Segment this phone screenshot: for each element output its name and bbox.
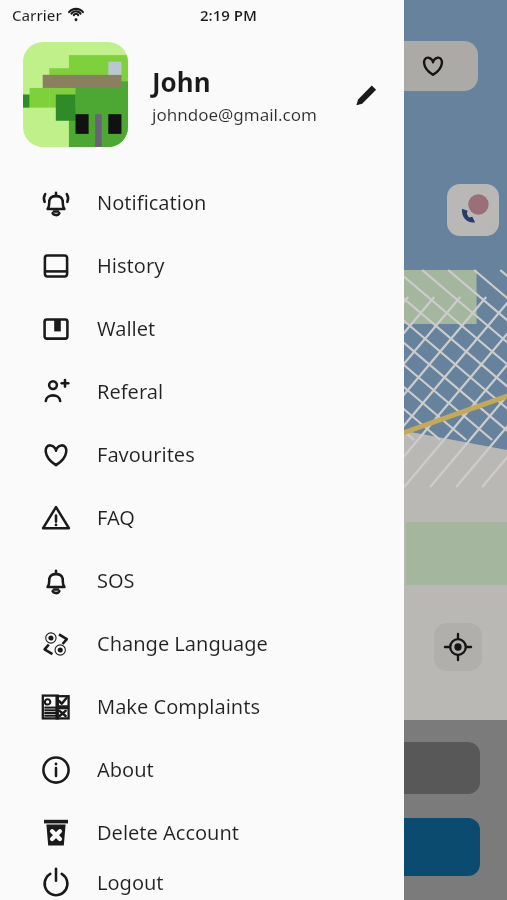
staticText: 2:19 PM	[200, 5, 257, 25]
button[interactable]: Delete Account	[0, 801, 404, 864]
button[interactable]: My location	[434, 623, 482, 671]
staticText: Favourites	[97, 441, 195, 468]
staticText: Referal	[97, 378, 164, 405]
staticText: Logout	[97, 869, 164, 896]
button[interactable]: Favourites	[0, 423, 404, 486]
staticText: John	[152, 64, 211, 99]
staticText: Notification	[97, 189, 207, 216]
staticText: johndoe@gmail.com	[152, 103, 317, 126]
button[interactable]	[380, 742, 480, 794]
button[interactable]: Profile picture	[23, 42, 128, 147]
staticText: FAQ	[97, 504, 135, 531]
button[interactable]	[380, 818, 480, 876]
button[interactable]: Favourite	[388, 41, 478, 91]
staticText: History	[97, 252, 165, 279]
button[interactable]: Referal	[0, 360, 404, 423]
button[interactable]: Wallet	[0, 297, 404, 360]
staticText: About	[97, 756, 154, 783]
button[interactable]: About	[0, 738, 404, 801]
staticText: Wallet	[97, 315, 156, 342]
button[interactable]: Help	[447, 184, 499, 236]
button[interactable]: Notification	[0, 171, 404, 234]
staticText: Carrier	[12, 5, 62, 25]
button[interactable]: FAQ	[0, 486, 404, 549]
staticText: Delete Account	[97, 819, 240, 846]
button[interactable]: History	[0, 234, 404, 297]
button[interactable]: Logout	[0, 864, 404, 900]
button[interactable]: Change Language	[0, 612, 404, 675]
staticText: SOS	[97, 567, 135, 594]
button[interactable]: SOS	[0, 549, 404, 612]
staticText: Change Language	[97, 630, 268, 657]
staticText: Make Complaints	[97, 693, 260, 720]
button[interactable]: Make Complaints	[0, 675, 404, 738]
button[interactable]: Edit profile	[346, 75, 386, 115]
